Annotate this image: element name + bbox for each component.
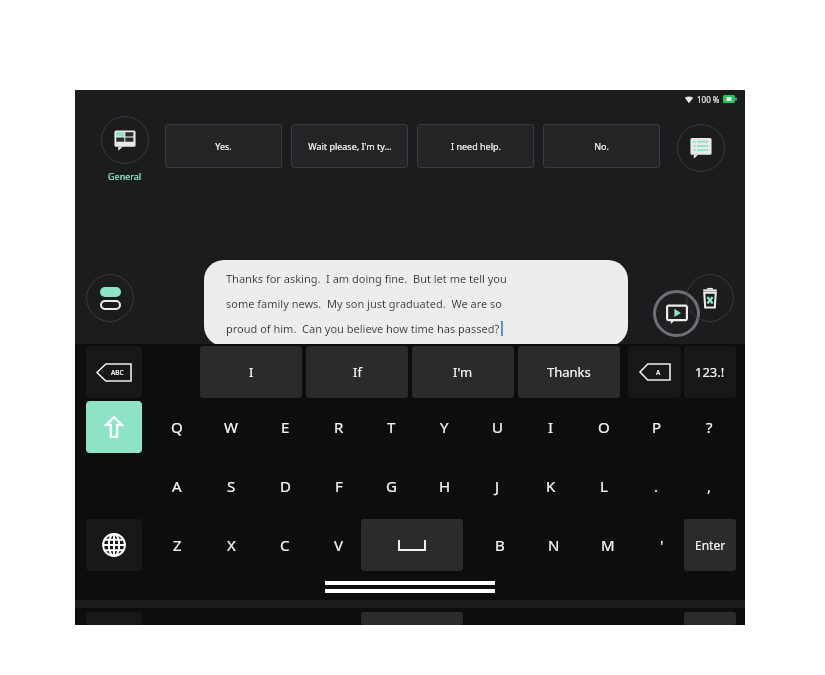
staticText: K — [546, 476, 556, 496]
staticText: U — [492, 417, 503, 437]
button[interactable]: R — [312, 401, 365, 453]
staticText: ABC — [111, 368, 124, 377]
button[interactable]: . — [630, 460, 683, 512]
button[interactable]: Change language — [86, 519, 142, 571]
staticText: General — [108, 170, 142, 182]
staticText: Yes. — [215, 140, 232, 152]
button[interactable]: O — [577, 401, 630, 453]
button[interactable]: K — [524, 460, 577, 512]
button[interactable]: Clear text — [686, 274, 734, 322]
staticText: N — [548, 535, 560, 555]
button[interactable]: Speak — [656, 293, 697, 334]
staticText: I — [548, 417, 554, 437]
button[interactable]: Z — [150, 519, 204, 571]
staticText: , — [707, 476, 712, 496]
staticText: A — [656, 368, 661, 377]
staticText: T — [387, 417, 396, 437]
staticText: D — [280, 476, 291, 496]
button[interactable]: I — [200, 346, 302, 398]
staticText: Thanks for asking. I am doing fine. But … — [226, 271, 507, 286]
button[interactable]: S — [204, 460, 258, 512]
button[interactable]: T — [365, 401, 418, 453]
button[interactable]: 123.! — [684, 346, 736, 398]
button[interactable]: Yes. — [165, 124, 282, 168]
staticText: E — [281, 417, 290, 437]
staticText: some family news. My son just graduated.… — [226, 296, 502, 311]
button[interactable]: J — [471, 460, 524, 512]
button[interactable]: Layout toggle — [86, 274, 134, 322]
staticText: S — [227, 476, 236, 496]
button[interactable]: V — [312, 519, 366, 571]
button[interactable]: , — [683, 460, 736, 512]
button[interactable]: Thanks for asking. I am doing fine. But … — [204, 260, 628, 346]
staticText: A — [172, 476, 182, 496]
staticText: X — [227, 535, 236, 555]
staticText: L — [600, 476, 608, 496]
button[interactable]: L — [577, 460, 630, 512]
button[interactable]: Space — [361, 519, 463, 571]
button[interactable]: Phrase list — [677, 124, 725, 172]
button[interactable]: ' — [635, 519, 689, 571]
staticText: Wait please, I'm ty... — [308, 140, 392, 152]
staticText: 100 % — [697, 94, 720, 105]
button[interactable]: C — [258, 519, 312, 571]
staticText: proud of him. Can you believe how time h… — [226, 321, 500, 336]
staticText: Y — [440, 417, 449, 437]
staticText: V — [334, 535, 344, 555]
button[interactable]: F — [312, 460, 365, 512]
staticText: No. — [594, 140, 609, 152]
staticText: R — [334, 417, 344, 437]
staticText: F — [335, 476, 343, 496]
staticText: Q — [171, 417, 183, 437]
button[interactable]: No. — [543, 124, 660, 168]
button[interactable]: Q — [150, 401, 204, 453]
button[interactable]: B — [473, 519, 527, 571]
button[interactable]: If — [306, 346, 408, 398]
button[interactable]: W — [204, 401, 258, 453]
staticText: P — [652, 417, 662, 437]
button[interactable]: M — [581, 519, 635, 571]
button[interactable]: U — [471, 401, 524, 453]
button[interactable]: P — [630, 401, 683, 453]
staticText: I need help. — [451, 140, 501, 152]
button[interactable]: Shift — [86, 401, 142, 453]
staticText: Enter — [695, 537, 726, 553]
button[interactable]: E — [258, 401, 312, 453]
button[interactable]: X — [204, 519, 258, 571]
button[interactable]: I'm — [412, 346, 514, 398]
button[interactable]: N — [527, 519, 581, 571]
button[interactable]: Y — [418, 401, 471, 453]
staticText: M — [601, 535, 615, 555]
staticText: J — [495, 476, 500, 496]
staticText: I — [249, 363, 254, 381]
button[interactable]: ? — [683, 401, 736, 453]
button[interactable]: Wait please, I'm ty... — [291, 124, 408, 168]
button[interactable]: D — [258, 460, 312, 512]
staticText: I'm — [453, 363, 473, 381]
staticText: Z — [173, 535, 182, 555]
button[interactable]: A — [150, 460, 204, 512]
button[interactable]: G — [365, 460, 418, 512]
staticText: O — [598, 417, 610, 437]
staticText: H — [439, 476, 451, 496]
button[interactable]: Enter — [684, 519, 736, 571]
staticText: . — [654, 476, 659, 496]
button[interactable]: I need help. — [417, 124, 534, 168]
button[interactable]: Backspace — [628, 346, 681, 398]
staticText: ' — [660, 535, 664, 555]
button[interactable]: ABC back — [86, 346, 142, 398]
staticText: ? — [706, 417, 713, 437]
staticText: Thanks — [547, 363, 591, 381]
button[interactable]: H — [418, 460, 471, 512]
staticText: G — [386, 476, 397, 496]
staticText: B — [495, 535, 505, 555]
staticText: C — [280, 535, 290, 555]
staticText: 123.! — [695, 363, 725, 381]
button[interactable]: I — [524, 401, 577, 453]
staticText: If — [353, 363, 362, 381]
button[interactable]: Thanks — [518, 346, 620, 398]
button[interactable]: General — [86, 116, 164, 182]
staticText: W — [224, 417, 238, 437]
